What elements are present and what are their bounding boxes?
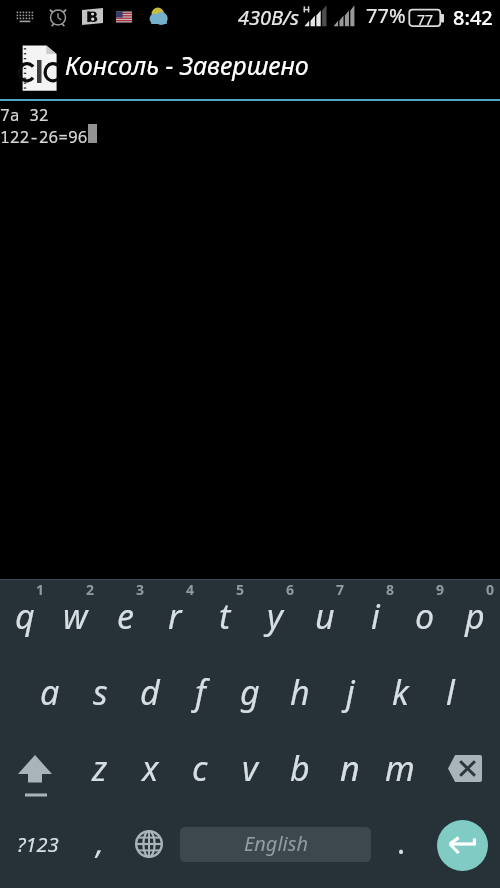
button[interactable]: 2 [50, 580, 100, 655]
button[interactable]: c [175, 731, 225, 808]
staticText: s [93, 669, 108, 715]
button[interactable]: 1 [0, 580, 50, 655]
button[interactable]: n [325, 731, 375, 808]
button[interactable]: Консоль - Завершено [0, 32, 500, 99]
staticText: t [219, 593, 231, 639]
staticText: 9 [436, 580, 445, 599]
staticText: 77 [417, 10, 434, 29]
staticText: e [117, 593, 134, 639]
staticText: n [340, 745, 360, 791]
staticText: u [315, 593, 335, 639]
staticText: , [96, 822, 104, 863]
staticText: y [267, 593, 283, 639]
button[interactable]: l [425, 655, 475, 731]
button[interactable]: English [180, 827, 371, 862]
button[interactable]: m [375, 731, 425, 808]
staticText: 7a 32 [0, 104, 49, 126]
staticText: f [195, 669, 206, 715]
button[interactable]: x [125, 731, 175, 808]
button[interactable]: . [375, 808, 425, 887]
button[interactable]: 4 [150, 580, 200, 655]
button[interactable]: 6 [250, 580, 300, 655]
staticText: m [385, 745, 415, 791]
staticText: . [397, 822, 406, 863]
button[interactable]: b [275, 731, 325, 808]
staticText: a [40, 669, 60, 715]
button[interactable]: 0 [450, 580, 500, 655]
staticText: 77% [366, 2, 406, 29]
button[interactable]: , [75, 808, 125, 887]
staticText: 0 [486, 580, 495, 599]
staticText: g [240, 669, 260, 715]
staticText: 2 [86, 580, 95, 599]
staticText: 4 [186, 580, 195, 599]
button[interactable]: k [375, 655, 425, 731]
button[interactable]: 5 [200, 580, 250, 655]
staticText: z [92, 745, 108, 791]
button[interactable]: 7 [300, 580, 350, 655]
button[interactable]: s [75, 655, 125, 731]
button[interactable]: z [75, 731, 125, 808]
staticText: v [242, 745, 258, 791]
staticText: q [15, 593, 35, 639]
staticText: j [346, 669, 355, 715]
button[interactable]: g [225, 655, 275, 731]
staticText: o [415, 593, 435, 639]
staticText: Консоль - Завершено [65, 48, 309, 82]
button[interactable]: Enter [425, 808, 500, 887]
staticText: 7 [336, 580, 345, 599]
staticText: 8 [386, 580, 395, 599]
staticText: p [465, 593, 485, 639]
button[interactable]: j [325, 655, 375, 731]
staticText: l [446, 669, 455, 715]
staticText: 122-26=96 [0, 126, 88, 148]
staticText: h [290, 669, 310, 715]
staticText: r [168, 593, 182, 639]
staticText: 5 [236, 580, 245, 599]
button[interactable]: ?123 [0, 808, 75, 887]
button[interactable]: f [175, 655, 225, 731]
staticText: ?123 [17, 831, 59, 858]
staticText: 1 [36, 580, 45, 599]
staticText: 6 [286, 580, 295, 599]
staticText: i [371, 593, 380, 639]
button[interactable]: 9 [400, 580, 450, 655]
staticText: x [142, 745, 159, 791]
button[interactable]: Change keyboard language [125, 808, 175, 887]
staticText: c [192, 745, 208, 791]
button[interactable]: a [25, 655, 75, 731]
staticText: d [140, 669, 160, 715]
staticText: 430B/s [238, 4, 299, 31]
button[interactable]: Backspace [425, 731, 500, 808]
staticText: 3 [136, 580, 145, 599]
button[interactable]: 3 [100, 580, 150, 655]
button[interactable]: Shift [0, 731, 75, 808]
staticText: b [290, 745, 310, 791]
staticText: 8:42 [453, 4, 493, 31]
staticText: English [244, 830, 308, 857]
button[interactable]: h [275, 655, 325, 731]
staticText: w [63, 593, 88, 639]
button[interactable]: 8 [350, 580, 400, 655]
button[interactable]: v [225, 731, 275, 808]
button[interactable]: d [125, 655, 175, 731]
staticText: k [392, 669, 409, 715]
